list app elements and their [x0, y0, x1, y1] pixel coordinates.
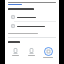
button[interactable] — [8, 22, 56, 30]
button[interactable]: Connecting device — [42, 46, 54, 59]
button[interactable]: Nearby device — [11, 46, 20, 57]
button[interactable]: Saved device — [27, 46, 36, 57]
button[interactable] — [8, 13, 56, 21]
